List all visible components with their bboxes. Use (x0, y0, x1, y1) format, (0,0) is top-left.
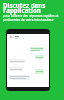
staticText: pour obtenir des réponses rapides et per… (3, 14, 59, 22)
staticText: Discutez dans l'application (3, 1, 46, 15)
